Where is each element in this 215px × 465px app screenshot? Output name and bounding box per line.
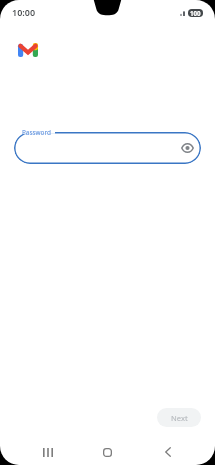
button[interactable]: Show password (178, 139, 196, 157)
button[interactable]: Next (157, 408, 201, 427)
button[interactable]: Show password (14, 132, 201, 164)
staticText: Password (22, 128, 51, 137)
button[interactable]: Back (147, 439, 188, 465)
button[interactable]: Home (87, 439, 128, 465)
staticText: 100 (190, 9, 201, 17)
staticText: 10:00 (12, 6, 36, 18)
staticText: Next (171, 413, 188, 423)
button[interactable]: Recents (27, 439, 68, 465)
